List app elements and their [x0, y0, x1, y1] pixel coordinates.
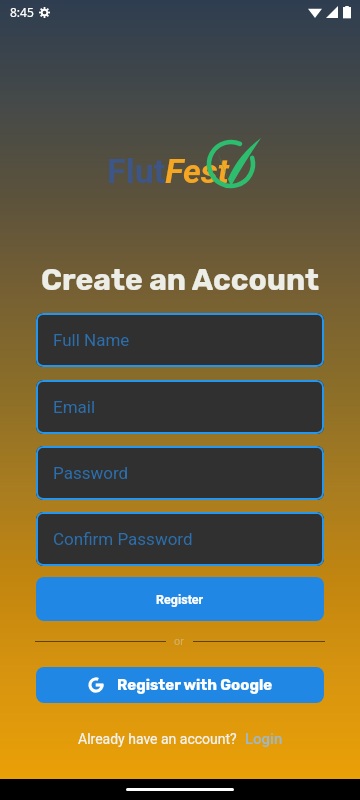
staticText: FlutFest: [107, 151, 229, 191]
staticText: Full Name: [53, 330, 130, 350]
staticText: Login: [245, 730, 283, 748]
staticText: 8:45: [10, 4, 34, 20]
staticText: Register: [156, 592, 204, 607]
staticText: Email: [53, 397, 96, 417]
button[interactable]: Register with Google: [36, 667, 324, 703]
staticText: Already have an account?: [78, 731, 237, 747]
staticText: Confirm Password: [53, 529, 193, 549]
staticText: or: [174, 635, 185, 648]
button[interactable]: Login: [245, 730, 283, 748]
staticText: Create an Account: [41, 262, 320, 298]
staticText: Password: [53, 463, 129, 483]
staticText: Register with Google: [117, 676, 273, 694]
button[interactable]: Register: [36, 577, 324, 621]
button[interactable]: Password: [36, 446, 324, 500]
button[interactable]: Email: [36, 380, 324, 434]
button[interactable]: Confirm Password: [36, 512, 324, 566]
button[interactable]: Full Name: [36, 313, 324, 367]
